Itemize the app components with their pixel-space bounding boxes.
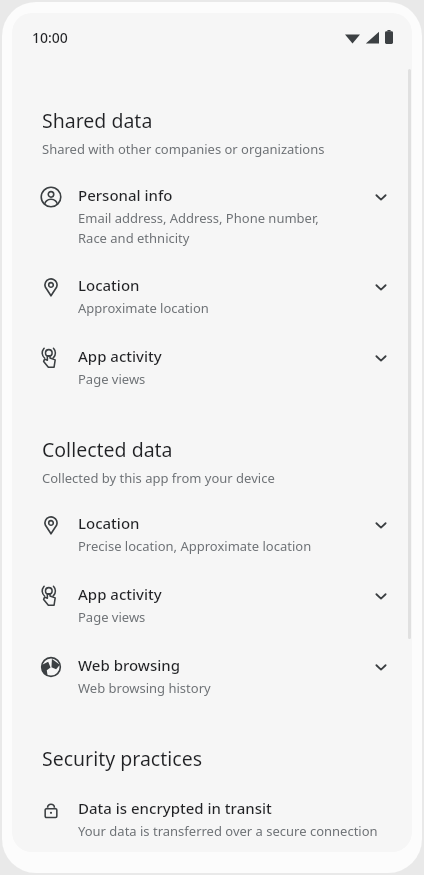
staticText: Data is encrypted in transit bbox=[78, 798, 272, 818]
staticText: Location bbox=[78, 513, 140, 533]
staticText: Web browsing history bbox=[78, 679, 211, 697]
staticText: 10:00 bbox=[32, 28, 68, 47]
button[interactable]: Expand Web browsing bbox=[370, 656, 392, 678]
staticText: Collected by this app from your device bbox=[42, 469, 275, 487]
button[interactable]: Location bbox=[12, 275, 412, 317]
button[interactable]: Expand Personal info bbox=[370, 186, 392, 208]
staticText: Email address, Address, Phone number, Ra… bbox=[78, 209, 319, 247]
button[interactable]: App activity bbox=[12, 346, 412, 388]
button[interactable]: Expand App activity bbox=[370, 347, 392, 369]
staticText: Approximate location bbox=[78, 299, 209, 317]
staticText: Location bbox=[78, 275, 140, 295]
staticText: Web browsing bbox=[78, 655, 180, 675]
staticText: Page views bbox=[78, 608, 146, 626]
button[interactable]: Location bbox=[12, 513, 412, 555]
staticText: Precise location, Approximate location bbox=[78, 537, 312, 555]
staticText: Personal info bbox=[78, 185, 173, 205]
button[interactable]: Data is encrypted in transit bbox=[12, 798, 412, 840]
button[interactable]: Expand App activity bbox=[370, 585, 392, 607]
button[interactable]: Personal info bbox=[12, 185, 412, 247]
staticText: Shared data bbox=[42, 107, 153, 134]
button[interactable]: Expand Location bbox=[370, 276, 392, 298]
staticText: App activity bbox=[78, 346, 162, 366]
button[interactable]: Expand Location bbox=[370, 514, 392, 536]
staticText: Security practices bbox=[42, 745, 202, 772]
staticText: Collected data bbox=[42, 436, 173, 463]
button[interactable]: Web browsing bbox=[12, 655, 412, 697]
staticText: App activity bbox=[78, 584, 162, 604]
button[interactable]: App activity bbox=[12, 584, 412, 626]
staticText: Shared with other companies or organizat… bbox=[42, 140, 325, 158]
staticText: Your data is transferred over a secure c… bbox=[78, 822, 378, 840]
staticText: Page views bbox=[78, 370, 146, 388]
